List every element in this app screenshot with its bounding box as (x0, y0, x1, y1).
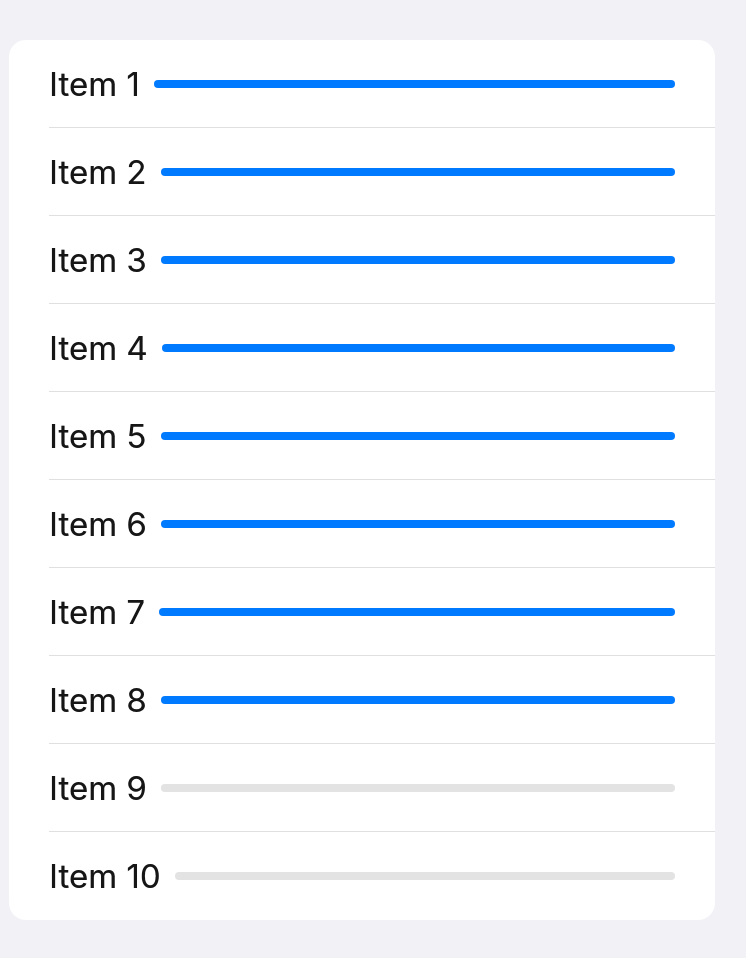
staticText: Item 5 (49, 416, 147, 456)
staticText: Item 8 (49, 680, 147, 720)
button[interactable]: Item 5 (9, 392, 715, 480)
staticText: Item 3 (49, 240, 147, 280)
staticText: Item 1 (49, 64, 140, 104)
staticText: Item 9 (49, 768, 147, 808)
staticText: Item 10 (49, 856, 161, 896)
button[interactable]: Item 10 (9, 832, 715, 920)
button[interactable]: Item 6 (9, 480, 715, 568)
button[interactable]: Item 4 (9, 304, 715, 392)
staticText: Item 6 (49, 504, 147, 544)
staticText: Item 7 (49, 592, 145, 632)
staticText: Item 2 (49, 152, 147, 192)
button[interactable]: Item 9 (9, 744, 715, 832)
button[interactable]: Item 3 (9, 216, 715, 304)
button[interactable]: Item 2 (9, 128, 715, 216)
button[interactable]: Item 7 (9, 568, 715, 656)
button[interactable]: Item 1 (9, 40, 715, 128)
button[interactable]: Item 8 (9, 656, 715, 744)
staticText: Item 4 (49, 328, 148, 368)
